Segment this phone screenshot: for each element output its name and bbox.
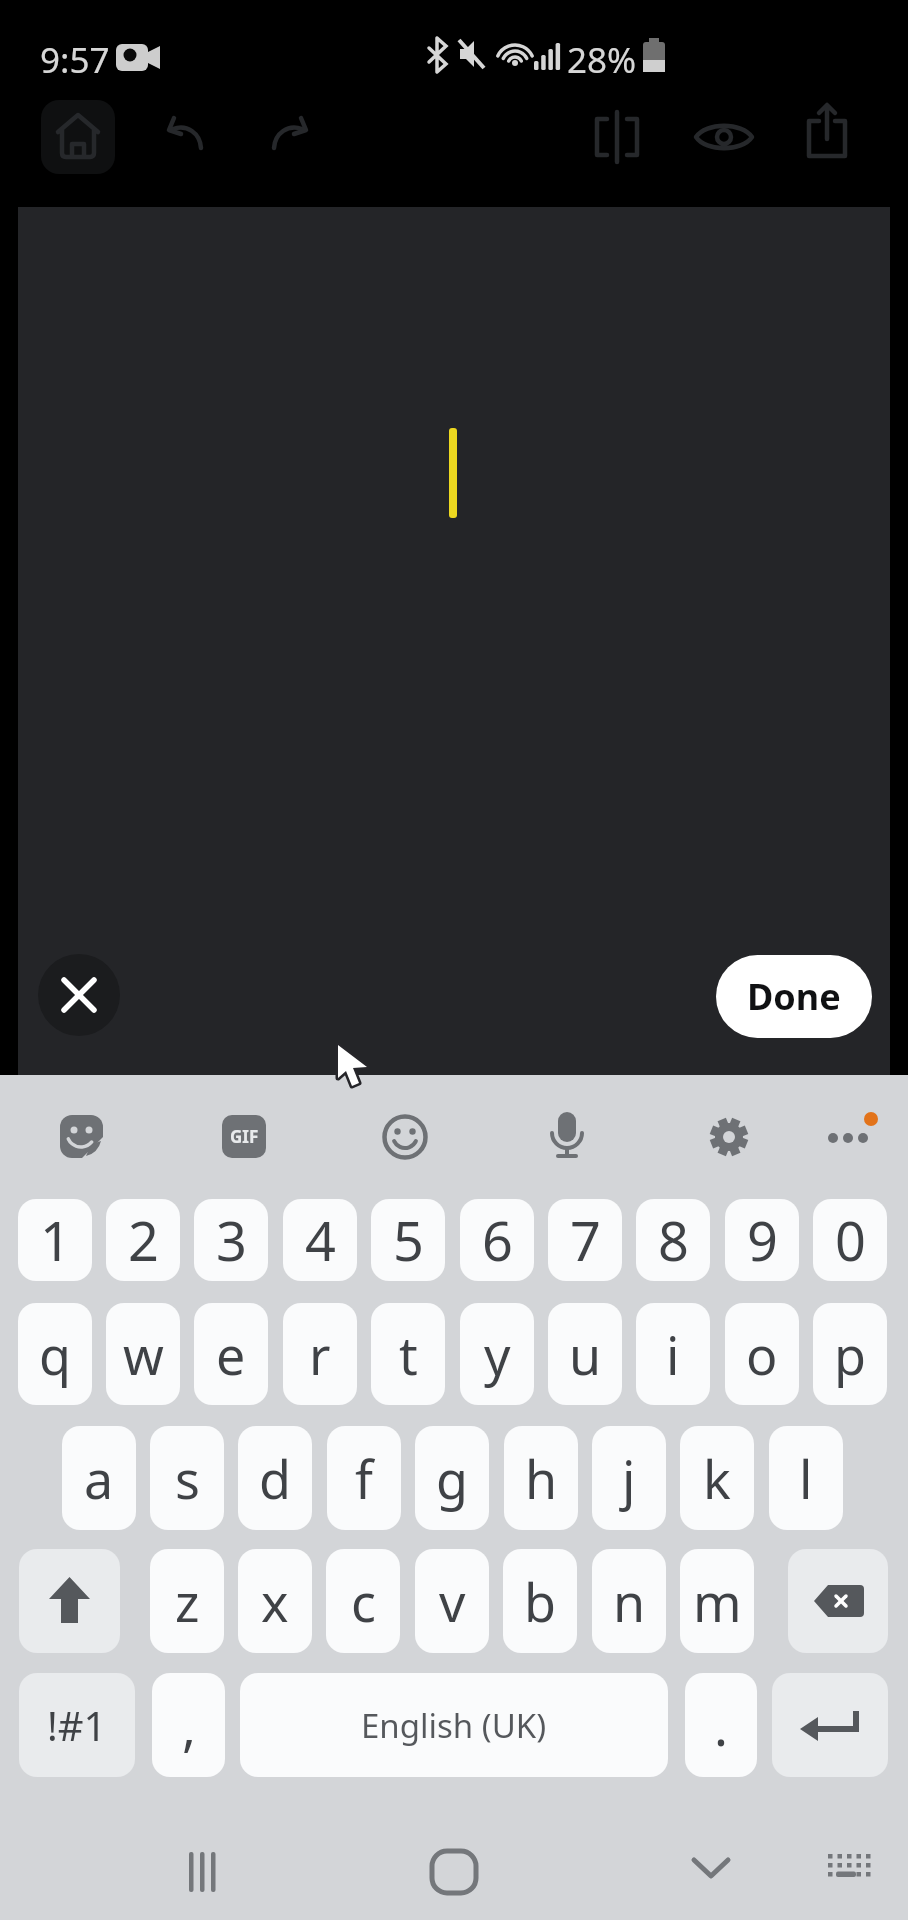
button[interactable]: y — [460, 1303, 534, 1405]
staticText: 28% — [567, 36, 637, 76]
staticText: 1 — [40, 1203, 71, 1277]
button[interactable] — [255, 100, 327, 174]
button[interactable]: g — [415, 1426, 489, 1530]
staticText: e — [216, 1319, 246, 1390]
button[interactable]: v — [415, 1549, 489, 1653]
staticText: u — [569, 1319, 602, 1390]
button[interactable]: q — [18, 1303, 92, 1405]
staticText: k — [703, 1443, 731, 1514]
button[interactable]: 1 — [18, 1199, 92, 1281]
button[interactable] — [170, 1838, 234, 1902]
staticText: w — [123, 1319, 164, 1390]
staticText: v — [439, 1566, 466, 1637]
button[interactable] — [544, 1110, 590, 1162]
staticText: 3 — [216, 1203, 247, 1277]
button[interactable]: u — [548, 1303, 622, 1405]
staticText: f — [355, 1443, 373, 1514]
staticText: j — [622, 1443, 636, 1514]
button[interactable]: !#1 — [19, 1673, 135, 1777]
staticText: o — [746, 1319, 778, 1390]
staticText: d — [259, 1443, 291, 1514]
staticText: i — [666, 1319, 680, 1390]
button[interactable] — [822, 1838, 878, 1894]
button[interactable]: English (UK) — [240, 1673, 668, 1777]
button[interactable] — [41, 100, 115, 174]
button[interactable] — [791, 100, 863, 174]
button[interactable]: 0 — [813, 1199, 887, 1281]
staticText: l — [799, 1443, 813, 1514]
button[interactable] — [150, 100, 222, 174]
staticText: 9:57 — [40, 36, 110, 76]
button[interactable]: b — [503, 1549, 577, 1653]
staticText: 8 — [658, 1203, 689, 1277]
staticText: n — [613, 1566, 646, 1637]
staticText: 0 — [835, 1203, 866, 1277]
button[interactable]: l — [769, 1426, 843, 1530]
button[interactable]: Done — [716, 955, 872, 1038]
staticText: 9 — [747, 1203, 778, 1277]
staticText: m — [693, 1566, 742, 1637]
button[interactable]: h — [504, 1426, 578, 1530]
staticText: q — [39, 1319, 71, 1390]
button[interactable] — [688, 100, 760, 174]
staticText: p — [834, 1319, 866, 1390]
button[interactable]: x — [238, 1549, 312, 1653]
button[interactable]: s — [150, 1426, 224, 1530]
button[interactable]: w — [106, 1303, 180, 1405]
button[interactable]: 2 — [106, 1199, 180, 1281]
staticText: 4 — [305, 1203, 336, 1277]
button[interactable]: . — [685, 1673, 757, 1777]
button[interactable]: m — [680, 1549, 754, 1653]
staticText: s — [175, 1443, 200, 1514]
button[interactable]: 9 — [725, 1199, 799, 1281]
button[interactable]: 4 — [283, 1199, 357, 1281]
button[interactable]: 3 — [194, 1199, 268, 1281]
staticText: t — [399, 1319, 418, 1390]
button[interactable] — [581, 100, 653, 174]
staticText: a — [84, 1443, 114, 1514]
button[interactable]: p — [813, 1303, 887, 1405]
button[interactable]: i — [636, 1303, 710, 1405]
button[interactable]: 8 — [636, 1199, 710, 1281]
staticText: x — [261, 1566, 289, 1637]
staticText: English (UK) — [361, 1703, 547, 1748]
staticText: 7 — [570, 1203, 601, 1277]
button[interactable]: z — [150, 1549, 224, 1653]
staticText: 5 — [393, 1203, 424, 1277]
button[interactable]: 7 — [548, 1199, 622, 1281]
staticText: c — [351, 1566, 376, 1637]
button[interactable]: 5 — [371, 1199, 445, 1281]
staticText: 6 — [482, 1203, 513, 1277]
button[interactable] — [706, 1114, 752, 1160]
staticText: GIF — [230, 1125, 259, 1148]
button[interactable]: o — [725, 1303, 799, 1405]
staticText: !#1 — [47, 1698, 107, 1752]
staticText: g — [436, 1443, 468, 1514]
button[interactable] — [19, 1549, 120, 1653]
button[interactable]: f — [327, 1426, 401, 1530]
button[interactable]: , — [152, 1673, 225, 1777]
button[interactable] — [772, 1673, 888, 1777]
staticText: h — [525, 1443, 558, 1514]
button[interactable] — [788, 1549, 888, 1653]
button[interactable]: n — [592, 1549, 666, 1653]
staticText: . — [714, 1690, 728, 1761]
button[interactable]: e — [194, 1303, 268, 1405]
button[interactable] — [820, 1108, 880, 1168]
button[interactable]: a — [62, 1426, 136, 1530]
button[interactable]: GIF — [222, 1115, 266, 1158]
button[interactable] — [60, 1115, 103, 1158]
button[interactable] — [679, 1838, 743, 1902]
button[interactable]: c — [326, 1549, 400, 1653]
button[interactable]: 6 — [460, 1199, 534, 1281]
button[interactable]: r — [283, 1303, 357, 1405]
button[interactable]: d — [238, 1426, 312, 1530]
staticText: y — [484, 1319, 511, 1390]
staticText: , — [182, 1690, 196, 1761]
button[interactable] — [382, 1114, 428, 1160]
button[interactable]: t — [371, 1303, 445, 1405]
button[interactable]: j — [592, 1426, 666, 1530]
button[interactable]: k — [680, 1426, 754, 1530]
button[interactable] — [38, 954, 120, 1036]
button[interactable] — [422, 1838, 486, 1902]
